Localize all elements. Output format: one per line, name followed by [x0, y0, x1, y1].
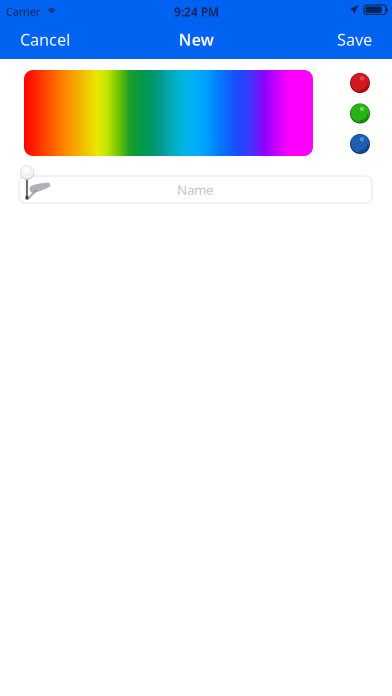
staticText: Save	[337, 29, 372, 50]
button[interactable]: Save	[327, 18, 382, 61]
staticText: Name	[177, 181, 214, 198]
staticText: 9:24 PM	[174, 4, 219, 20]
button[interactable]: Cancel	[10, 18, 80, 61]
button[interactable]: Name	[19, 176, 372, 203]
button[interactable]: Blue	[350, 134, 370, 154]
button[interactable]: Green	[350, 103, 370, 123]
button[interactable]: Colour spectrum	[24, 70, 313, 156]
staticText: New	[178, 29, 213, 50]
staticText: Cancel	[20, 29, 70, 50]
staticText: Carrier	[6, 4, 40, 19]
button[interactable]: Red	[350, 73, 370, 93]
